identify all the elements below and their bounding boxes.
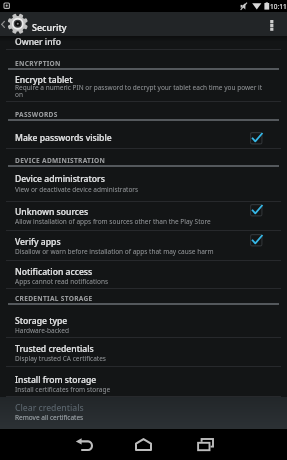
staticText: Storage type xyxy=(15,315,68,327)
button[interactable] xyxy=(0,36,287,49)
staticText: Make passwords visible xyxy=(15,132,112,144)
staticText: Display trusted CA certificates xyxy=(15,354,106,363)
staticText: ENCRYPTION xyxy=(15,59,61,68)
button[interactable] xyxy=(0,230,287,260)
staticText: Apps cannot read notifications xyxy=(15,277,109,286)
staticText: 10:11 xyxy=(270,2,287,11)
button[interactable] xyxy=(0,260,287,288)
staticText: Security xyxy=(32,21,67,33)
staticText: Notification access xyxy=(15,266,93,278)
staticText: Hardware-backed xyxy=(15,326,69,335)
staticText: Clear credentials xyxy=(15,402,84,414)
staticText: Allow installation of apps from sources … xyxy=(15,217,211,226)
button[interactable] xyxy=(0,168,287,201)
button[interactable] xyxy=(262,12,287,36)
staticText: Device administrators xyxy=(15,173,105,185)
staticText: Verify apps xyxy=(15,236,61,248)
staticText: on xyxy=(15,90,23,99)
staticText: Owner info xyxy=(15,36,61,48)
button[interactable] xyxy=(60,429,107,460)
staticText: CREDENTIAL STORAGE xyxy=(15,294,93,303)
staticText: Install certificates from storage xyxy=(15,385,111,394)
staticText: Trusted credentials xyxy=(15,343,94,355)
button[interactable] xyxy=(0,201,287,231)
staticText: DEVICE ADMINISTRATION xyxy=(15,156,106,165)
staticText: Encrypt tablet xyxy=(15,74,73,86)
staticText: Require a numeric PIN or password to dec… xyxy=(15,83,263,92)
button[interactable] xyxy=(120,429,167,460)
button[interactable] xyxy=(0,12,120,36)
button[interactable] xyxy=(0,71,287,102)
staticText: Unknown sources xyxy=(15,206,89,218)
button[interactable] xyxy=(0,306,287,338)
staticText: PASSWORDS xyxy=(15,110,58,119)
button[interactable] xyxy=(0,366,287,396)
staticText: Disallow or warn before installation of … xyxy=(15,247,214,256)
staticText: Remove all certificates xyxy=(15,413,84,422)
button[interactable] xyxy=(0,337,287,366)
staticText: View or deactivate device administrators xyxy=(15,185,139,194)
button[interactable] xyxy=(0,122,287,148)
staticText: Install from storage xyxy=(15,374,97,386)
button[interactable] xyxy=(0,397,287,430)
button[interactable] xyxy=(182,429,229,460)
